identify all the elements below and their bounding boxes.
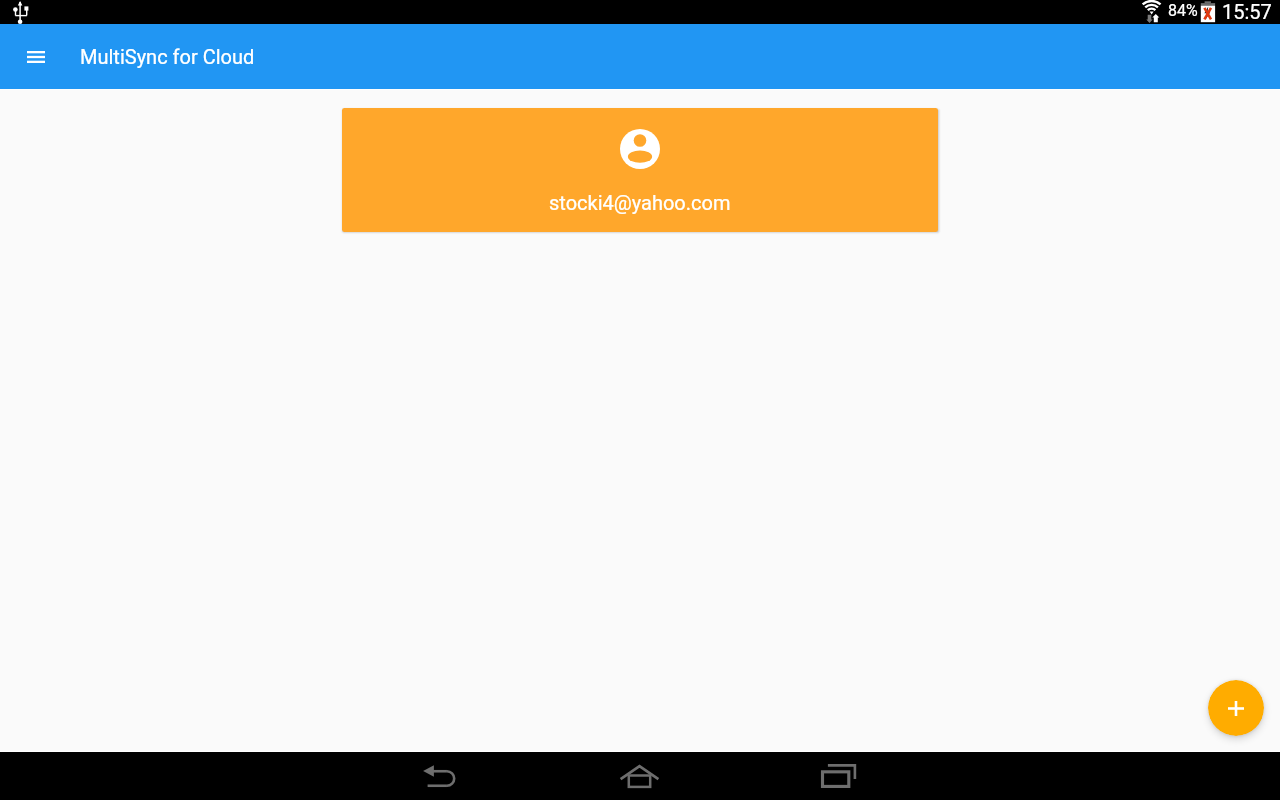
button[interactable]: Back	[399, 752, 479, 800]
staticText: 84%	[1168, 1, 1198, 20]
button[interactable]: Open navigation menu	[12, 32, 60, 80]
staticText: 15:57	[1222, 0, 1272, 23]
button[interactable]: Add account	[1208, 680, 1264, 736]
button[interactable]: Recent apps	[800, 752, 880, 800]
staticText: MultiSync for Cloud	[80, 45, 255, 68]
staticText: stocki4@yahoo.com	[549, 191, 731, 214]
button[interactable]: stocki4@yahoo.com	[342, 108, 938, 232]
button[interactable]: Home	[599, 752, 679, 800]
